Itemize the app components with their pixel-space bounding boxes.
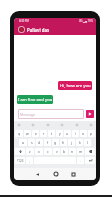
staticText: o (82, 131, 85, 136)
button[interactable]: d (36, 139, 43, 146)
staticText: 4G ▂▄ 76% (79, 19, 93, 23)
staticText: k (79, 140, 81, 145)
button[interactable]: Recents (68, 169, 78, 179)
button[interactable]: x (35, 148, 43, 155)
button[interactable]: Backspace (85, 148, 95, 155)
button[interactable]: c (44, 148, 52, 155)
button[interactable]: b (61, 148, 68, 155)
button[interactable]: f (44, 139, 51, 146)
button[interactable]: Keyboard tool (89, 123, 93, 127)
staticText: g (54, 140, 57, 145)
staticText: c (47, 149, 49, 154)
button[interactable]: p (88, 130, 95, 137)
staticText: z (29, 149, 31, 154)
button[interactable]: y (56, 130, 63, 137)
button[interactable]: e (32, 130, 39, 137)
staticText: Message (20, 112, 35, 117)
button[interactable]: m (77, 148, 84, 155)
button[interactable]: Home (51, 169, 61, 179)
button[interactable]: , (26, 157, 33, 164)
staticText: 8:30 PM (19, 19, 29, 23)
staticText: p (90, 131, 93, 136)
staticText: j (71, 140, 72, 145)
button[interactable]: Shift (15, 148, 25, 155)
button[interactable]: Back (32, 169, 42, 179)
staticText: e (35, 131, 37, 136)
button[interactable]: j (68, 139, 75, 146)
button[interactable]: Keyboard tool (17, 123, 21, 127)
button[interactable]: g (52, 139, 59, 146)
button[interactable]: w (24, 130, 31, 137)
staticText: f (47, 140, 49, 145)
staticText: r (43, 131, 45, 136)
staticText: Hi, how are you (60, 83, 91, 89)
button[interactable]: Keyboard tool (60, 123, 64, 127)
staticText: s (31, 140, 33, 145)
button[interactable]: i (72, 130, 79, 137)
button[interactable]: I am fine and you (17, 95, 53, 104)
button[interactable]: Pallavi das (14, 24, 96, 35)
button[interactable]: z (26, 148, 34, 155)
staticText: a (22, 140, 24, 145)
button[interactable]: ?123 (15, 157, 25, 164)
staticText: . (80, 159, 81, 163)
button[interactable]: Keyboard tool (46, 123, 50, 127)
button[interactable]: Message (18, 109, 84, 119)
staticText: w (26, 131, 29, 136)
button[interactable]: t (48, 130, 55, 137)
staticText: l (87, 140, 88, 145)
staticText: m (79, 149, 83, 154)
button[interactable]: k (76, 139, 83, 146)
staticText: h (62, 140, 65, 145)
staticText: i (75, 131, 76, 136)
staticText: , (29, 159, 30, 163)
button[interactable]: l (84, 139, 91, 146)
button[interactable]: h (60, 139, 67, 146)
staticText: ?123 (17, 159, 24, 163)
staticText: Pallavi das (27, 27, 50, 33)
staticText: I am fine and you (18, 97, 53, 103)
staticText: q (18, 131, 21, 136)
staticText: b (63, 149, 66, 154)
staticText: y (59, 131, 61, 136)
button[interactable]: Hi, how are you (58, 81, 92, 90)
button[interactable]: . (77, 157, 84, 164)
staticText: d (38, 140, 41, 145)
staticText: n (71, 149, 74, 154)
button[interactable]: Keyboard tool (31, 123, 35, 127)
button[interactable]: v (53, 148, 60, 155)
button[interactable]: s (28, 139, 35, 146)
button[interactable]: Send (86, 110, 94, 118)
button[interactable]: u (64, 130, 71, 137)
button[interactable]: Enter (85, 157, 95, 164)
staticText: v (56, 149, 58, 154)
button[interactable]: a (19, 139, 27, 146)
staticText: t (51, 131, 53, 136)
staticText: x (38, 149, 40, 154)
staticText: u (66, 131, 69, 136)
button[interactable]: n (69, 148, 76, 155)
button[interactable]: r (40, 130, 47, 137)
button[interactable]: q (15, 130, 23, 137)
button[interactable]: o (80, 130, 87, 137)
button[interactable]: Keyboard tool (75, 123, 79, 127)
